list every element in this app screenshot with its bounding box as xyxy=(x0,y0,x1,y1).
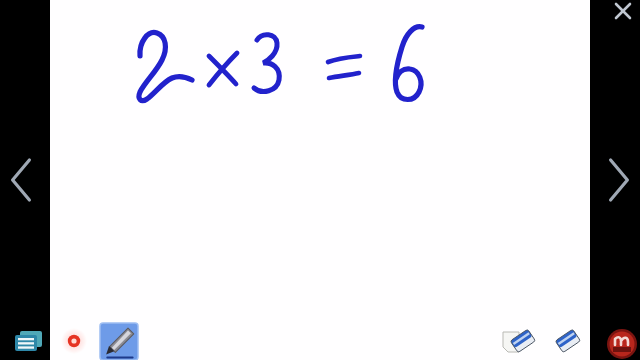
button[interactable]: Eraser xyxy=(552,324,590,360)
button[interactable]: Pages xyxy=(8,325,48,359)
button[interactable]: Record xyxy=(58,325,91,359)
button[interactable]: Next page xyxy=(598,158,638,204)
button[interactable]: Erase page xyxy=(500,324,542,360)
button[interactable]: Pen tool xyxy=(100,323,138,360)
button[interactable]: Previous page xyxy=(2,158,42,204)
button[interactable]: Close xyxy=(610,0,640,26)
